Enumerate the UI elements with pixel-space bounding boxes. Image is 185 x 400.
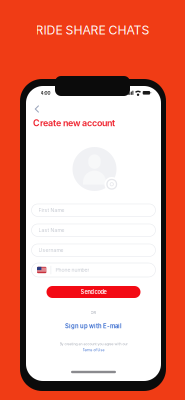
staticText: Send code (80, 289, 106, 295)
staticText: OR (90, 310, 96, 315)
staticText: Last Name (38, 227, 64, 233)
button[interactable]: Send code (46, 286, 140, 298)
staticText: Create new account (33, 118, 115, 128)
staticText: First Name (38, 207, 64, 213)
staticText: Username (38, 247, 63, 253)
staticText: Terms of Use (82, 348, 104, 352)
staticText: RIDE SHARE CHATS (35, 23, 149, 37)
staticText: By creating an account you agree with ou… (59, 342, 127, 346)
staticText: Sign up with E-mail (65, 322, 122, 330)
button[interactable]: Sign up with E-mail (58, 321, 128, 331)
button[interactable]: Back (31, 102, 43, 116)
staticText: 4:00 (40, 90, 50, 96)
button[interactable]: Terms of Use (78, 347, 108, 353)
staticText: Phone number (55, 267, 89, 273)
